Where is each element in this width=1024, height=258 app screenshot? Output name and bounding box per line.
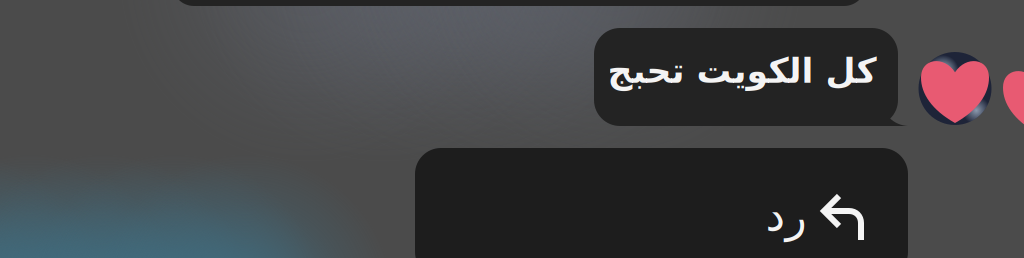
staticText: كل الكويت تحبج (607, 51, 876, 90)
staticText: رد (765, 191, 806, 241)
button[interactable]: رد (415, 148, 908, 258)
